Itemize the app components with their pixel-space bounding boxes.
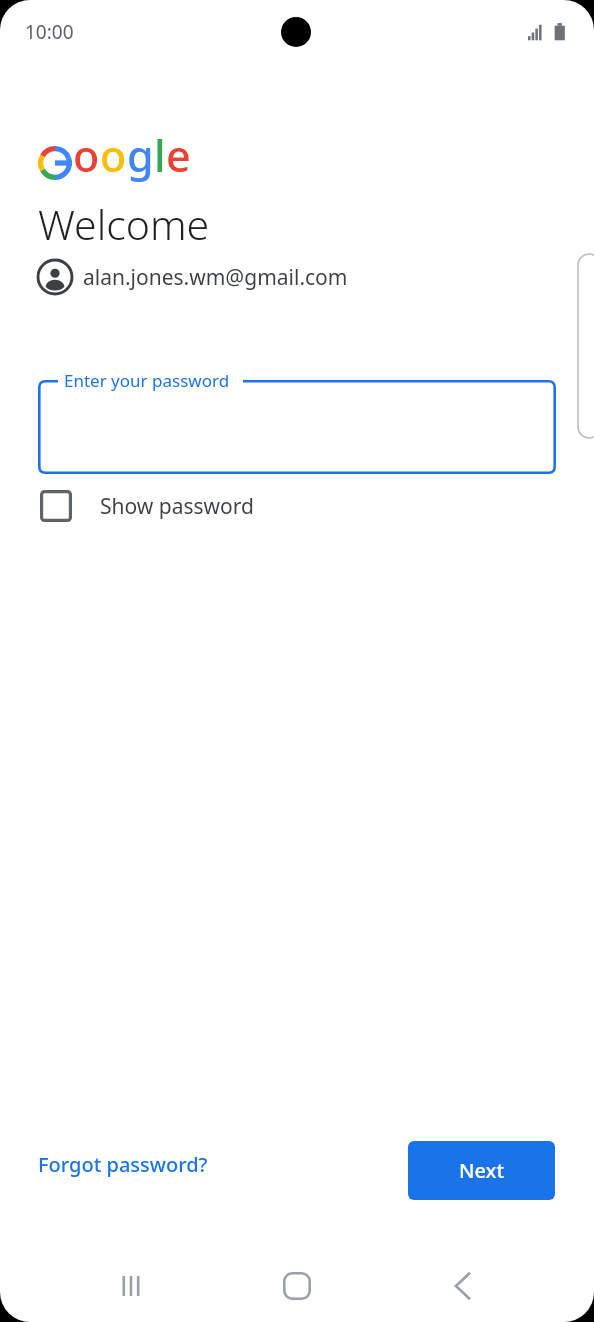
staticText: l	[154, 126, 166, 185]
staticText: Welcome	[38, 196, 210, 252]
button[interactable]: alan.jones.wm@gmail.com	[36, 258, 350, 296]
button[interactable]: Forgot password?	[30, 1145, 216, 1184]
staticText: e	[166, 126, 191, 185]
button[interactable]: Enter your password	[38, 380, 556, 474]
button[interactable]: Home	[265, 1254, 329, 1318]
staticText: g	[127, 126, 154, 185]
staticText: o	[73, 126, 100, 185]
staticText: 10:00	[25, 19, 74, 45]
staticText: Show password	[100, 492, 254, 521]
button[interactable]: Recents	[99, 1254, 163, 1318]
button[interactable]: Show password	[34, 484, 260, 528]
staticText: Next	[459, 1157, 505, 1184]
button[interactable]: Back	[431, 1254, 495, 1318]
button[interactable]: Next	[408, 1141, 555, 1200]
staticText: alan.jones.wm@gmail.com	[83, 263, 348, 292]
staticText: o	[100, 126, 127, 185]
staticText: Enter your password	[64, 369, 230, 392]
